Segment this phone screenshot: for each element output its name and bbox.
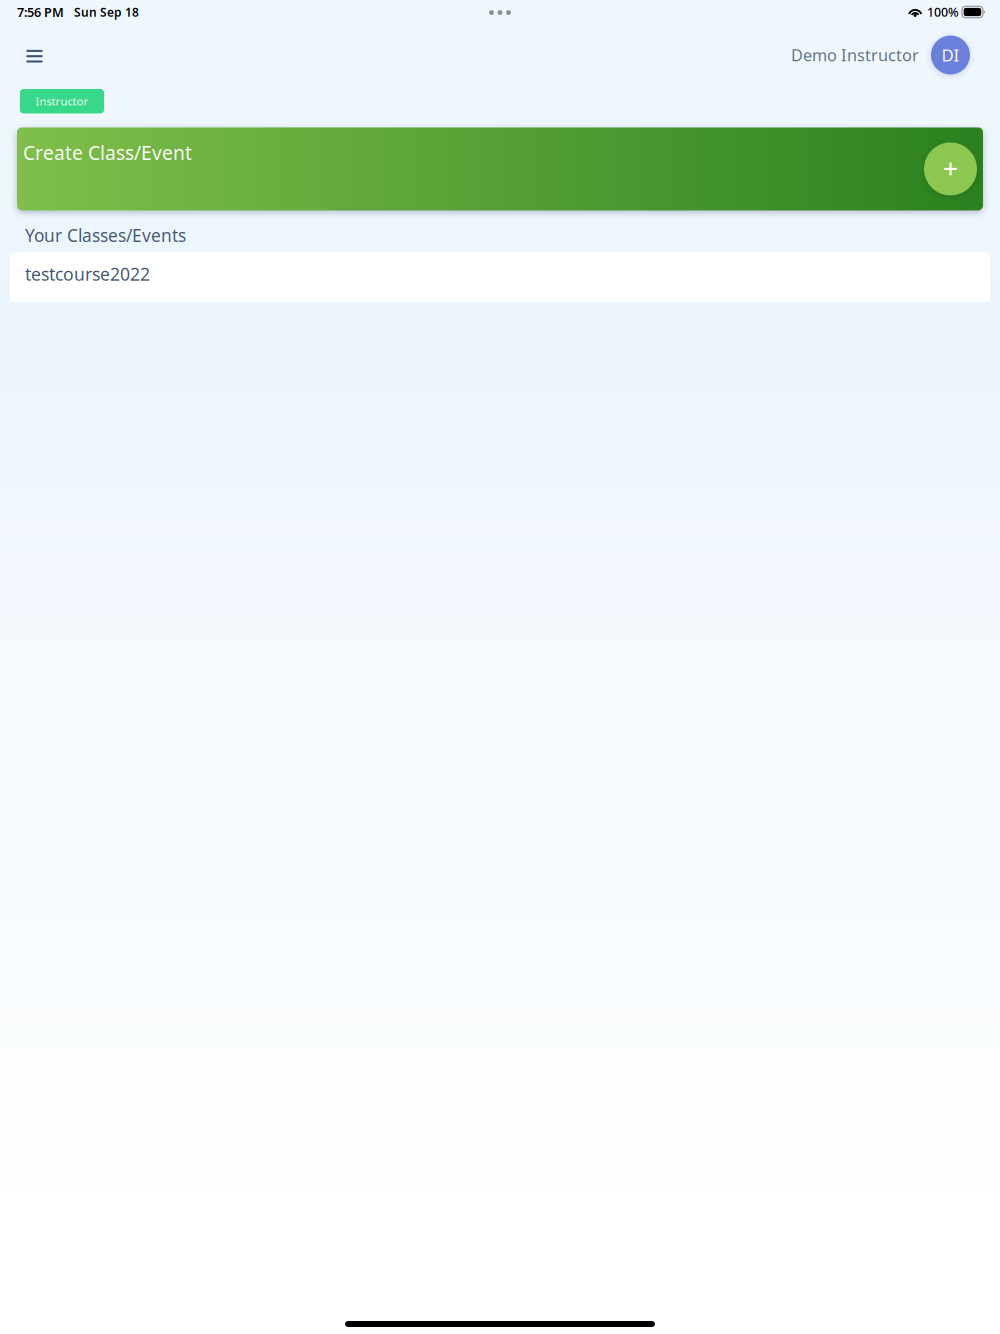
staticText: testcourse2022 bbox=[25, 262, 150, 286]
staticText: 100% bbox=[927, 4, 959, 20]
staticText: DI bbox=[941, 44, 959, 66]
staticText: Sun Sep 18 bbox=[74, 4, 139, 20]
button[interactable]: Menu bbox=[14, 35, 54, 75]
staticText: 7:56 PM bbox=[17, 3, 64, 21]
staticText: Create Class/Event bbox=[23, 139, 192, 166]
button[interactable]: Create Class/Event bbox=[17, 127, 983, 210]
button[interactable]: Demo Instructor bbox=[791, 35, 970, 74]
button[interactable]: Instructor bbox=[20, 89, 104, 113]
button[interactable]: testcourse2022 bbox=[10, 252, 990, 302]
staticText: Instructor bbox=[35, 93, 88, 109]
staticText: Demo Instructor bbox=[791, 44, 919, 66]
staticText: Your Classes/Events bbox=[25, 223, 186, 247]
